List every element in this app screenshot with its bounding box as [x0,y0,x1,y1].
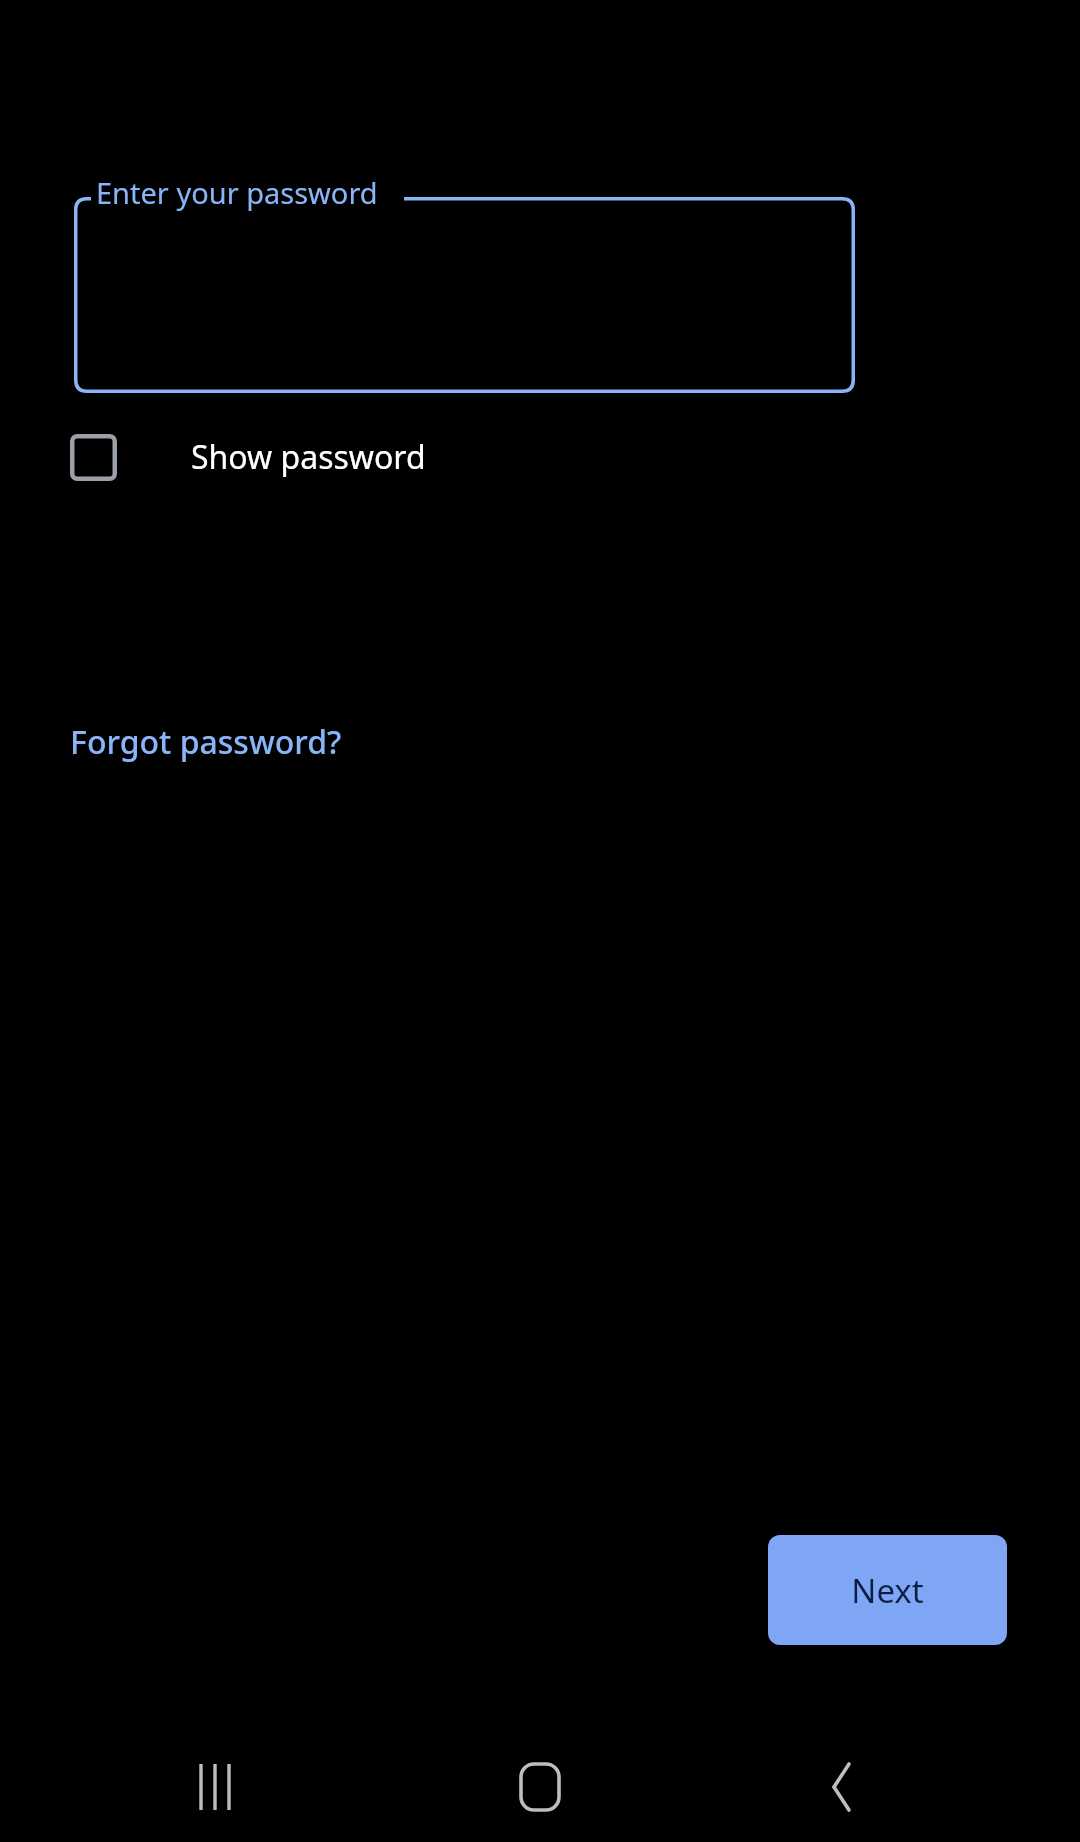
staticText: Show password [191,435,426,479]
button[interactable]: Recent apps [155,1727,275,1842]
button[interactable]: Forgot password? [60,708,352,776]
staticText: Enter your password [96,173,378,212]
staticText: Forgot password? [70,720,342,764]
button[interactable]: Home [480,1727,600,1842]
button[interactable]: Back [785,1727,905,1842]
staticText: Next [851,1568,924,1613]
button[interactable]: Show password [56,418,426,496]
button[interactable] [74,197,855,393]
button[interactable]: Next [768,1535,1007,1645]
